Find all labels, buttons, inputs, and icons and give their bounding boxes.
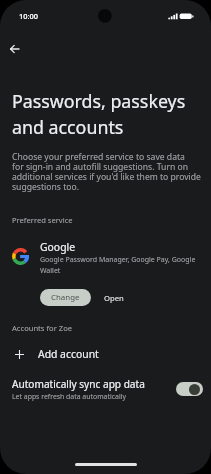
staticText: Change xyxy=(51,292,80,303)
staticText: Let apps refresh data automatically xyxy=(12,392,126,401)
button[interactable]: Add account xyxy=(0,344,211,364)
button[interactable]: Change xyxy=(40,289,91,306)
staticText: Preferred service xyxy=(12,215,73,225)
button[interactable]: Automatically sync app data xyxy=(0,377,211,401)
button[interactable]: Back xyxy=(2,36,27,61)
staticText: Accounts for Zoe xyxy=(12,323,73,333)
staticText: Passwords, passkeys and accounts xyxy=(12,89,186,140)
staticText: Add account xyxy=(38,347,99,361)
button[interactable]: Automatically sync app data xyxy=(176,382,203,396)
staticText: Google xyxy=(40,240,76,254)
staticText: Automatically sync app data xyxy=(12,377,145,391)
staticText: Google Password Manager, Google Pay, Goo… xyxy=(40,255,196,275)
staticText: Open xyxy=(104,293,124,303)
button[interactable]: Open xyxy=(91,289,135,306)
staticText: 10:00 xyxy=(19,11,38,21)
button[interactable]: Google xyxy=(0,240,211,275)
staticText: Choose your preferred service to save da… xyxy=(12,151,201,192)
